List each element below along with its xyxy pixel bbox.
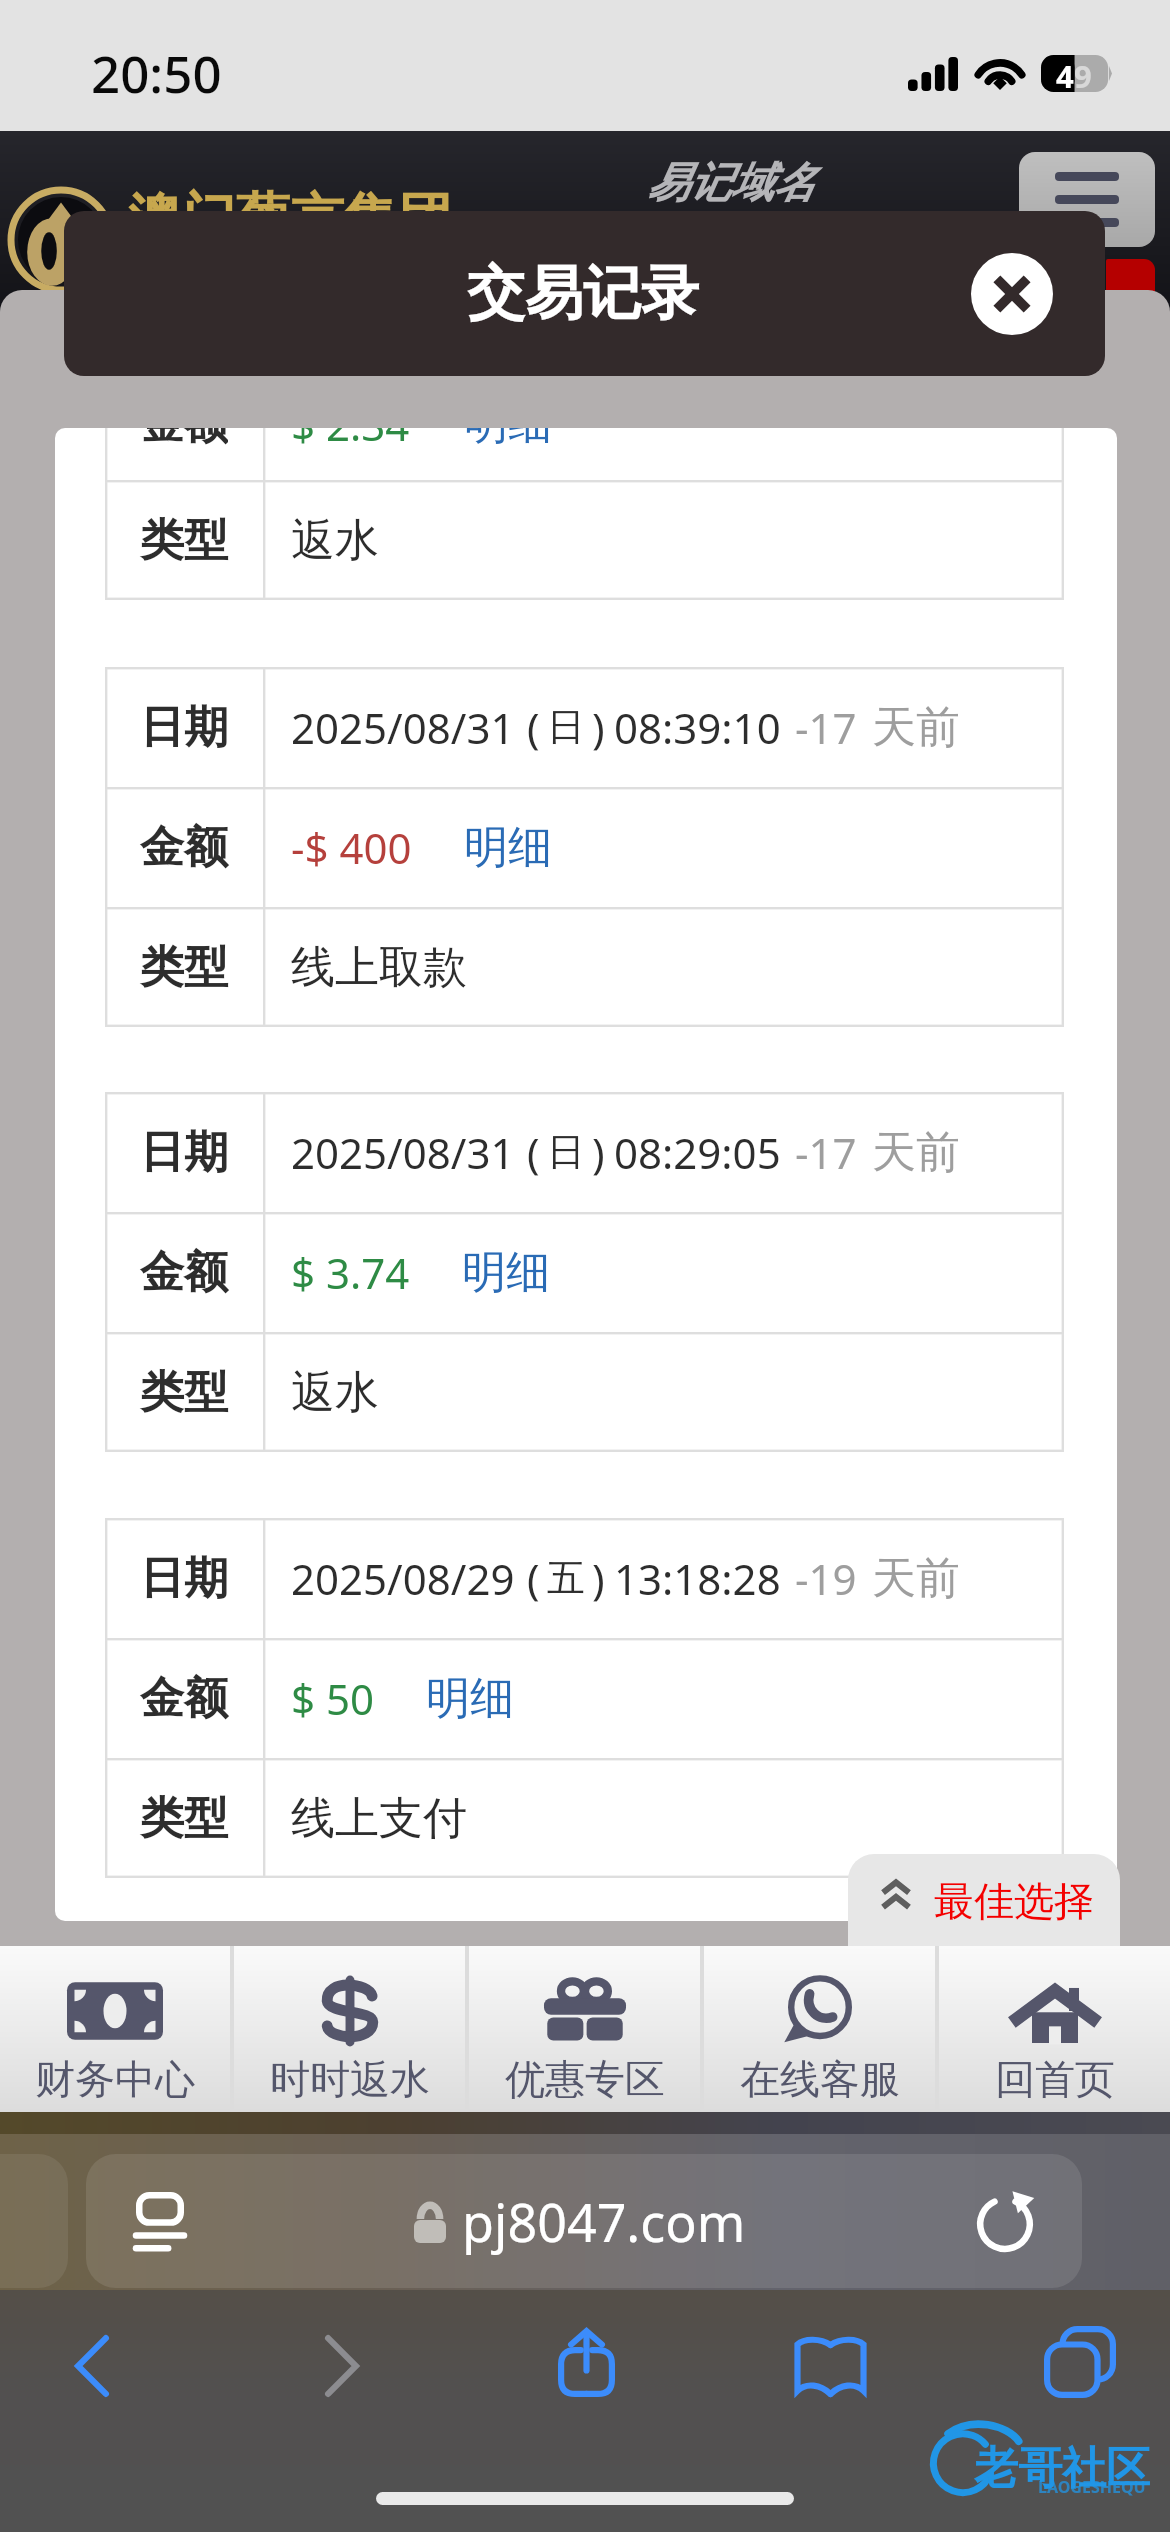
staticText: 日期 [140, 700, 228, 755]
staticText: $ 3.74 [291, 1244, 410, 1301]
staticText: 天前 [872, 1125, 960, 1180]
staticText: 时时返水 [270, 2054, 430, 2104]
button[interactable]: Share [540, 2312, 632, 2412]
staticText: ( [527, 699, 540, 756]
staticText: -19 [795, 1550, 857, 1607]
staticText: 最佳选择 [934, 1876, 1094, 1926]
button[interactable]: Tabs [1034, 2316, 1126, 2408]
staticText: 2025/08/31 [291, 1124, 515, 1181]
staticText: 返水 [291, 513, 379, 568]
button[interactable]: 明细 [462, 1245, 550, 1300]
staticText: 日 [547, 703, 585, 751]
staticText: 9 [1074, 55, 1092, 92]
staticText: -$ 400 [291, 819, 412, 876]
staticText: 线上支付 [291, 1791, 467, 1846]
button[interactable]: Close [971, 253, 1053, 335]
staticText: 明细 [426, 1671, 514, 1726]
staticText: $ 50 [291, 1670, 374, 1727]
staticText: 在线客服 [740, 2054, 900, 2104]
button[interactable]: Back [46, 2320, 138, 2412]
button[interactable]: 回首页 [939, 1946, 1170, 2112]
staticText: ( [527, 1124, 540, 1181]
staticText: ( [527, 1550, 540, 1607]
staticText: 类型 [140, 1365, 228, 1420]
staticText: 类型 [140, 513, 228, 568]
other: Reload [974, 2190, 1036, 2252]
staticText: 财务中心 [35, 2054, 195, 2104]
staticText: ) [592, 1124, 605, 1181]
staticText: 老哥社区 [974, 2441, 1150, 2496]
staticText: 13:18:28 [614, 1550, 781, 1607]
staticText: 明细 [464, 428, 552, 448]
button[interactable]: 最佳选择 [848, 1854, 1120, 1948]
staticText: 类型 [140, 940, 228, 995]
staticText: 08:29:05 [614, 1124, 781, 1181]
staticText: ) [592, 1550, 605, 1607]
staticText: 金额 [140, 820, 228, 875]
staticText: 2025/08/31 [291, 699, 515, 756]
staticText: 明细 [462, 1245, 550, 1300]
staticText: 2025/08/29 [291, 1550, 515, 1607]
button[interactable]: 明细 [464, 820, 552, 875]
staticText: LAOGESHEQU [1038, 2476, 1146, 2498]
staticText: 日 [547, 1128, 585, 1176]
staticText: 澳门葡京集团 [128, 185, 452, 253]
staticText: 日期 [140, 1125, 228, 1180]
button[interactable]: Menu [1019, 152, 1155, 247]
staticText: 类型 [140, 1791, 228, 1846]
staticText: 天前 [872, 700, 960, 755]
staticText: $ 2.34 [291, 428, 410, 448]
staticText: 天前 [872, 1551, 960, 1606]
button[interactable]: 财务中心 [0, 1946, 230, 2112]
staticText: 金额 [140, 428, 228, 448]
staticText: -17 [795, 699, 857, 756]
staticText: 日期 [140, 1551, 228, 1606]
staticText: 线上取款 [291, 940, 467, 995]
staticText: 金额 [140, 1245, 228, 1300]
button[interactable]: 在线客服 [704, 1946, 935, 2112]
button[interactable]: 优惠专区 [469, 1946, 700, 2112]
button[interactable]: 明细 [426, 1671, 514, 1726]
button[interactable]: Page settings [86, 2154, 1082, 2288]
staticText: 08:39:10 [614, 699, 781, 756]
button[interactable]: Bookmarks [784, 2318, 876, 2410]
staticText: 20:50 [91, 38, 222, 107]
staticText: 金额 [140, 1671, 228, 1726]
staticText: 回首页 [995, 2054, 1115, 2104]
staticText: 优惠专区 [505, 2054, 665, 2104]
staticText: ) [592, 699, 605, 756]
other: Page settings [136, 2192, 184, 2250]
button[interactable]: 时时返水 [234, 1946, 465, 2112]
staticText: 4 [1056, 55, 1074, 92]
staticText: 五 [547, 1554, 585, 1602]
staticText: pj8047.com [462, 2186, 746, 2257]
staticText: 返水 [291, 1365, 379, 1420]
staticText: -17 [795, 1124, 857, 1181]
button[interactable]: Forward [296, 2320, 388, 2412]
staticText: 明细 [464, 820, 552, 875]
staticText: 交易记录 [467, 257, 699, 330]
staticText: 易记域名 [647, 157, 815, 210]
